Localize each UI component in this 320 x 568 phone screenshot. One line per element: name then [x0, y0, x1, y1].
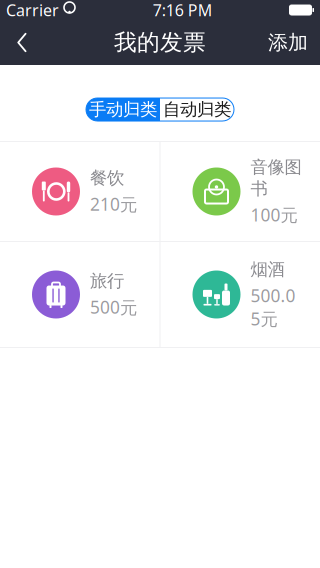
staticText: 100元 [250, 203, 297, 226]
staticText: 餐饮 [90, 167, 124, 189]
staticText: 500.05元 [250, 284, 295, 330]
staticText: 210元 [90, 193, 137, 216]
button[interactable]: 手动归类 [86, 98, 160, 121]
staticText: 旅行 [90, 270, 124, 292]
staticText: 500元 [90, 296, 137, 319]
button[interactable]: 返回 [0, 20, 44, 64]
staticText: 我的发票 [114, 29, 206, 56]
staticText: 添加 [268, 30, 308, 55]
staticText: 7:16 PM [153, 0, 213, 21]
button[interactable]: 餐饮 [0, 142, 159, 241]
staticText: 手动归类 [89, 99, 157, 120]
staticText: 音像图书 [250, 157, 301, 199]
button[interactable]: 添加 [256, 20, 320, 64]
button[interactable]: 旅行 [0, 242, 159, 347]
staticText: 自动归类 [163, 99, 231, 120]
button[interactable]: 烟酒 [160, 242, 320, 347]
button[interactable]: 自动归类 [160, 98, 234, 121]
button[interactable]: 音像图书 [160, 142, 320, 241]
staticText: Carrier [6, 0, 59, 21]
staticText: 烟酒 [250, 259, 284, 280]
